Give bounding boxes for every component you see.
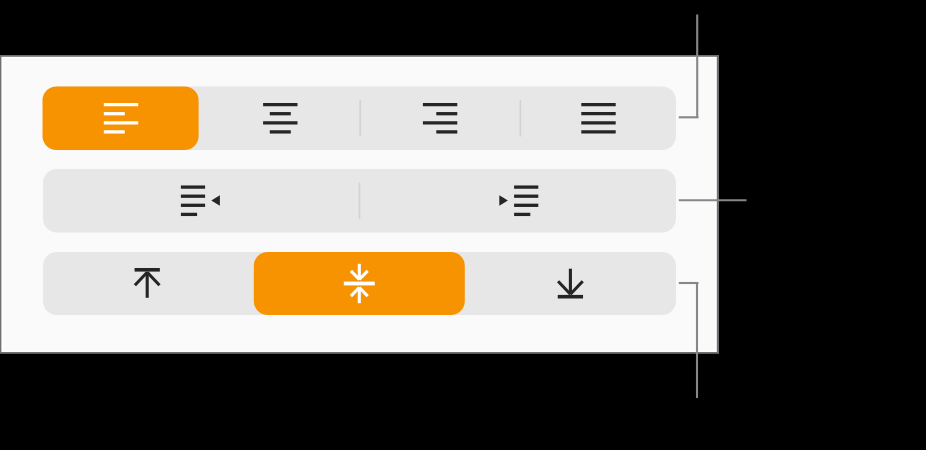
button[interactable]: Align bottom — [465, 252, 676, 315]
button[interactable]: Align right — [360, 87, 518, 151]
button[interactable]: Align center — [201, 87, 359, 151]
button[interactable]: Align top — [43, 252, 254, 315]
button[interactable]: Align middle — [254, 252, 465, 315]
button[interactable]: Justify — [518, 87, 676, 151]
button[interactable]: Increase indent — [360, 169, 677, 233]
button[interactable]: Align left — [43, 87, 201, 151]
button[interactable]: Decrease indent — [43, 169, 360, 233]
